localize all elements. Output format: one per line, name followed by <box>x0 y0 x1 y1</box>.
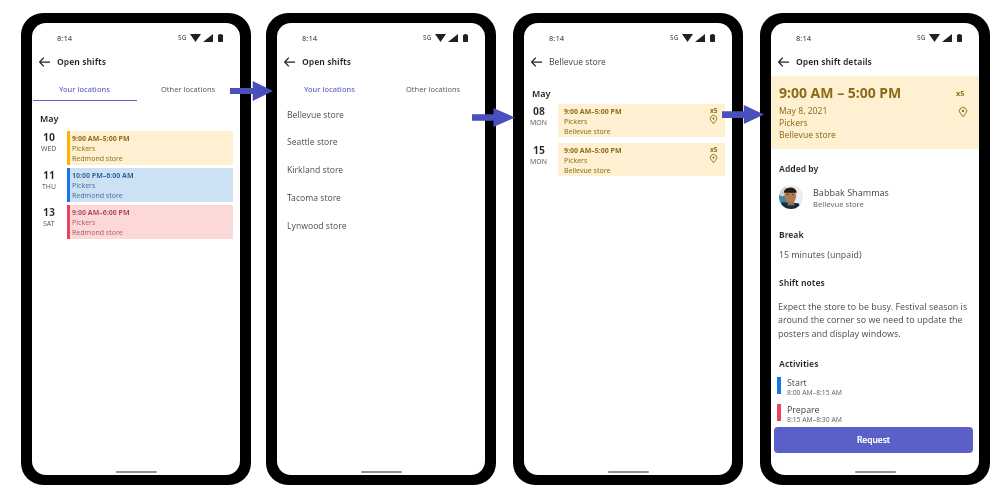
staticText: x5 <box>710 145 718 154</box>
button[interactable]: Back <box>277 51 301 73</box>
staticText: Expect the store to be busy. Festival se… <box>778 300 972 339</box>
staticText: MON <box>530 157 547 166</box>
staticText: 5G <box>670 33 679 42</box>
button[interactable]: Kirkland store <box>277 156 485 184</box>
staticText: Redmond store <box>72 191 123 201</box>
staticText: Bellevue store <box>287 109 344 121</box>
staticText: Activities <box>779 358 819 370</box>
staticText: 8:15 AM–8:30 AM <box>787 415 842 424</box>
button[interactable]: Other locations <box>381 78 485 99</box>
staticText: Bellevue store <box>564 166 611 176</box>
staticText: Pickers <box>72 181 96 191</box>
button[interactable]: Seattle store <box>277 128 485 156</box>
staticText: THU <box>42 182 56 191</box>
staticText: Other locations <box>406 84 461 94</box>
staticText: Your locations <box>59 84 110 94</box>
staticText: 9:00 AM–5:00 PM <box>564 107 622 117</box>
staticText: Added by <box>779 163 819 175</box>
staticText: Your locations <box>304 84 355 94</box>
staticText: 9:00 AM–5:00 PM <box>564 146 622 156</box>
staticText: May 8, 2021 <box>779 105 828 117</box>
button[interactable]: Your locations <box>277 78 381 99</box>
staticText: Shift notes <box>779 277 825 289</box>
button[interactable]: 9:00 AM–6:00 PM <box>67 205 233 239</box>
button[interactable]: Your locations <box>32 78 136 99</box>
button[interactable]: Request <box>774 427 973 453</box>
staticText: Pickers <box>779 117 808 129</box>
staticText: Pickers <box>72 218 96 228</box>
staticText: Seattle store <box>287 136 338 148</box>
staticText: 5G <box>178 33 187 42</box>
staticText: 5G <box>423 33 432 42</box>
staticText: May <box>40 113 59 125</box>
button[interactable]: Other locations <box>136 78 240 99</box>
staticText: Bellevue store <box>813 199 864 209</box>
staticText: 9:00 AM–6:00 PM <box>72 208 130 218</box>
staticText: Bellevue store <box>549 56 606 68</box>
staticText: WED <box>41 144 57 153</box>
button[interactable]: Back <box>32 51 56 73</box>
staticText: 5G <box>917 33 926 42</box>
staticText: 8:14 <box>57 33 73 43</box>
staticText: Pickers <box>564 117 588 127</box>
staticText: 10 <box>43 130 55 144</box>
staticText: MON <box>530 118 547 127</box>
staticText: 8:14 <box>549 33 565 43</box>
staticText: 8:14 <box>302 33 318 43</box>
staticText: Break <box>779 229 804 241</box>
staticText: Babbak Shammas <box>813 186 889 198</box>
staticText: May <box>532 88 551 100</box>
button[interactable]: 9:00 AM–5:00 PM <box>558 143 725 176</box>
staticText: 08 <box>533 104 545 118</box>
staticText: SAT <box>43 219 55 228</box>
staticText: 9:00 AM – 5:00 PM <box>779 83 902 102</box>
staticText: Redmond store <box>72 228 123 238</box>
staticText: x5 <box>710 106 718 115</box>
staticText: 10:00 PM–6:00 AM <box>72 171 134 181</box>
button[interactable]: Bellevue store <box>277 101 485 129</box>
staticText: Bellevue store <box>779 129 836 141</box>
staticText: Lynwood store <box>287 220 347 232</box>
button[interactable]: 10:00 PM–6:00 AM <box>67 168 233 202</box>
staticText: Prepare <box>787 404 820 416</box>
staticText: Tacoma store <box>287 192 341 204</box>
button[interactable]: Tacoma store <box>277 184 485 212</box>
staticText: Pickers <box>564 156 588 166</box>
staticText: Open shift details <box>796 56 872 68</box>
staticText: Start <box>787 377 807 389</box>
button[interactable]: 9:00 AM–5:00 PM <box>558 104 725 137</box>
staticText: x5 <box>956 88 965 98</box>
staticText: 15 <box>533 143 545 157</box>
staticText: 9:00 AM–5:00 PM <box>72 134 130 144</box>
button[interactable]: Back <box>771 51 795 73</box>
button[interactable]: Back <box>524 51 548 73</box>
button[interactable]: 9:00 AM–5:00 PM <box>67 131 233 165</box>
staticText: Bellevue store <box>564 127 611 137</box>
button[interactable]: Lynwood store <box>277 212 485 240</box>
staticText: 8:00 AM–8:15 AM <box>787 388 842 397</box>
staticText: 8:14 <box>796 33 812 43</box>
staticText: Request <box>857 434 891 446</box>
staticText: Redmond store <box>72 154 123 164</box>
staticText: Other locations <box>161 84 216 94</box>
staticText: Pickers <box>72 144 96 154</box>
staticText: 11 <box>43 168 55 182</box>
staticText: Kirkland store <box>287 164 344 176</box>
staticText: Open shifts <box>302 56 352 68</box>
staticText: 15 minutes (unpaid) <box>779 249 862 261</box>
staticText: Open shifts <box>57 56 107 68</box>
staticText: 13 <box>43 205 55 219</box>
